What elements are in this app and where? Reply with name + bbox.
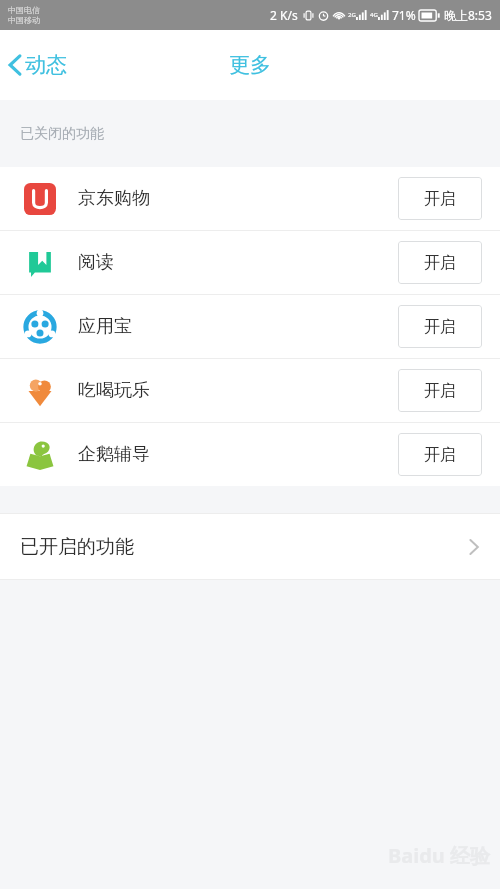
staticText: 吃喝玩乐 bbox=[78, 379, 150, 402]
button[interactable]: 动态 bbox=[0, 44, 79, 86]
staticText: 开启 bbox=[424, 445, 456, 465]
button[interactable]: 吃喝玩乐 bbox=[0, 359, 500, 422]
button[interactable]: 开启 bbox=[398, 241, 482, 284]
staticText: 开启 bbox=[424, 317, 456, 337]
button[interactable]: 京东购物 bbox=[0, 167, 500, 230]
staticText: 应用宝 bbox=[78, 315, 132, 338]
staticText: Baidu 经验 bbox=[387, 842, 490, 869]
button[interactable]: 已开启的功能 bbox=[0, 514, 500, 579]
staticText: 开启 bbox=[424, 253, 456, 273]
staticText: 晚上8:53 bbox=[444, 7, 492, 23]
staticText: 已关闭的功能 bbox=[20, 125, 104, 143]
staticText: 阅读 bbox=[78, 251, 114, 274]
button[interactable]: 应用宝 bbox=[0, 295, 500, 358]
button[interactable]: 开启 bbox=[398, 433, 482, 476]
staticText: 动态 bbox=[25, 52, 67, 78]
staticText: 开启 bbox=[424, 189, 456, 209]
button[interactable]: 阅读 bbox=[0, 231, 500, 294]
staticText: 中国移动 bbox=[8, 15, 40, 25]
staticText: 71% bbox=[392, 7, 416, 23]
button[interactable]: 开启 bbox=[398, 177, 482, 220]
staticText: 2 K/s bbox=[270, 7, 298, 23]
staticText: 更多 bbox=[229, 52, 271, 78]
staticText: 4G bbox=[370, 11, 378, 19]
staticText: 已开启的功能 bbox=[20, 535, 134, 559]
staticText: 中国电信 bbox=[8, 5, 40, 15]
button[interactable]: 开启 bbox=[398, 369, 482, 412]
staticText: 企鹅辅导 bbox=[78, 443, 150, 466]
staticText: 开启 bbox=[424, 381, 456, 401]
staticText: 2G bbox=[348, 11, 356, 19]
button[interactable]: 企鹅辅导 bbox=[0, 423, 500, 486]
button[interactable]: 开启 bbox=[398, 305, 482, 348]
staticText: 京东购物 bbox=[78, 187, 150, 210]
